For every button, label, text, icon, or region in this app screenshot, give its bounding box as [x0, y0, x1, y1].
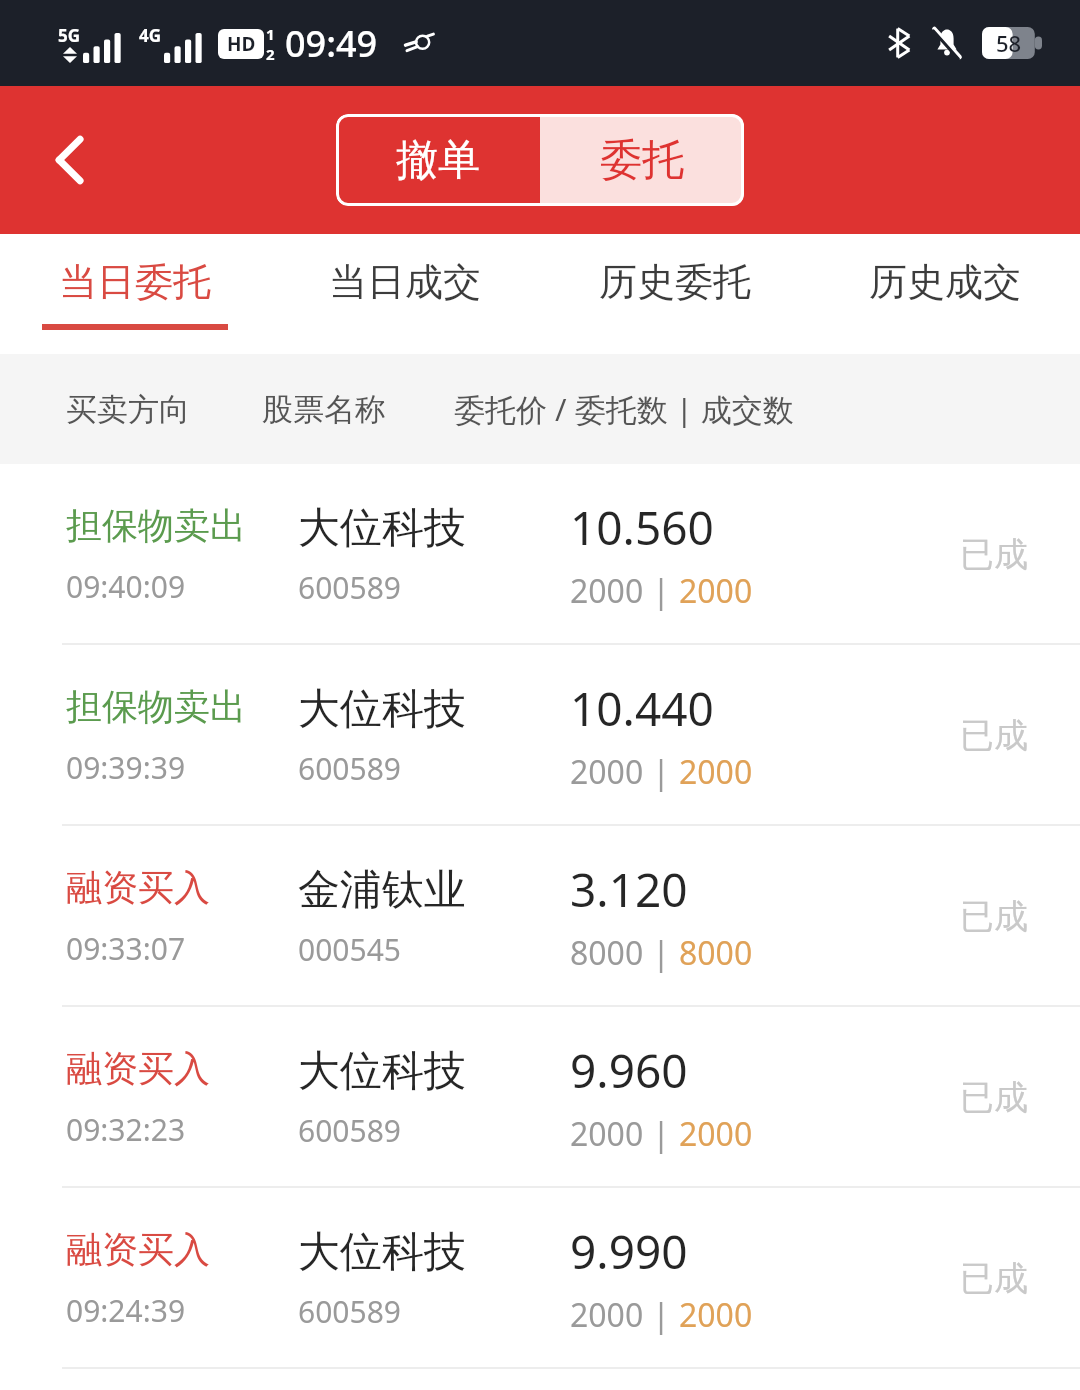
staticText: 09:39:39: [66, 747, 186, 788]
staticText: 09:49: [285, 19, 378, 68]
staticText: 已成: [960, 714, 1028, 757]
button[interactable]: 融资买入: [0, 826, 1080, 1007]
staticText: 8000: [679, 931, 753, 975]
staticText: 9.990: [570, 1220, 688, 1283]
staticText: 委托: [600, 134, 684, 187]
staticText: |: [644, 1293, 679, 1337]
button[interactable]: 当日委托: [0, 234, 270, 354]
staticText: |: [644, 931, 679, 975]
staticText: 2000: [679, 569, 753, 613]
staticText: 2: [266, 44, 275, 64]
staticText: 600589: [298, 1110, 401, 1151]
staticText: |: [644, 569, 679, 613]
staticText: 2000: [679, 1293, 753, 1337]
staticText: 1: [266, 24, 275, 44]
staticText: 2000: [570, 750, 644, 794]
button[interactable]: 担保物卖出: [0, 464, 1080, 645]
button[interactable]: 历史委托: [540, 234, 810, 354]
staticText: 当日委托: [59, 258, 211, 306]
staticText: 10.560: [570, 496, 714, 559]
button[interactable]: 融资买入: [0, 1188, 1080, 1369]
button[interactable]: 当日成交: [270, 234, 540, 354]
staticText: 09:24:39: [66, 1290, 186, 1331]
staticText: 历史委托: [599, 258, 751, 306]
staticText: 10.440: [570, 677, 714, 740]
button[interactable]: 融资买入: [0, 1007, 1080, 1188]
staticText: 担保物卖出: [66, 503, 246, 548]
staticText: 9.960: [570, 1039, 688, 1102]
staticText: 金浦钛业: [298, 864, 466, 917]
staticText: 600589: [298, 748, 401, 789]
staticText: 已成: [960, 1257, 1028, 1300]
staticText: |: [644, 750, 679, 794]
staticText: 融资买入: [66, 1227, 210, 1272]
staticText: 大位科技: [298, 502, 466, 555]
staticText: 历史成交: [869, 258, 1021, 306]
staticText: 已成: [960, 895, 1028, 938]
button[interactable]: 返回: [24, 114, 116, 206]
staticText: 大位科技: [298, 1226, 466, 1279]
staticText: 已成: [960, 1076, 1028, 1119]
staticText: 09:33:07: [66, 928, 186, 969]
staticText: 股票名称: [262, 390, 386, 429]
staticText: 当日成交: [329, 258, 481, 306]
staticText: 大位科技: [298, 683, 466, 736]
staticText: 撤单: [396, 134, 480, 187]
button[interactable]: 委托: [540, 114, 744, 206]
staticText: 000545: [298, 929, 401, 970]
staticText: 2000: [570, 1112, 644, 1156]
staticText: HD: [227, 31, 256, 57]
staticText: 融资买入: [66, 865, 210, 910]
staticText: 09:40:09: [66, 566, 186, 607]
staticText: 2000: [679, 750, 753, 794]
staticText: 09:32:23: [66, 1109, 186, 1150]
staticText: 买卖方向: [66, 390, 190, 429]
staticText: 2000: [679, 1112, 753, 1156]
staticText: 担保物卖出: [66, 684, 246, 729]
staticText: 融资买入: [66, 1046, 210, 1091]
staticText: 2000: [570, 1293, 644, 1337]
staticText: 600589: [298, 567, 401, 608]
button[interactable]: 撤单: [336, 114, 540, 206]
staticText: 大位科技: [298, 1045, 466, 1098]
staticText: |: [644, 1112, 679, 1156]
staticText: 5G: [58, 24, 81, 47]
staticText: 58: [996, 28, 1022, 58]
staticText: 600589: [298, 1291, 401, 1332]
staticText: 8000: [570, 931, 644, 975]
staticText: 委托价 / 委托数 | 成交数: [454, 388, 794, 430]
staticText: 2000: [570, 569, 644, 613]
staticText: 3.120: [570, 858, 688, 921]
button[interactable]: 担保物卖出: [0, 645, 1080, 826]
staticText: 4G: [139, 24, 162, 47]
staticText: 已成: [960, 533, 1028, 576]
button[interactable]: 历史成交: [810, 234, 1080, 354]
